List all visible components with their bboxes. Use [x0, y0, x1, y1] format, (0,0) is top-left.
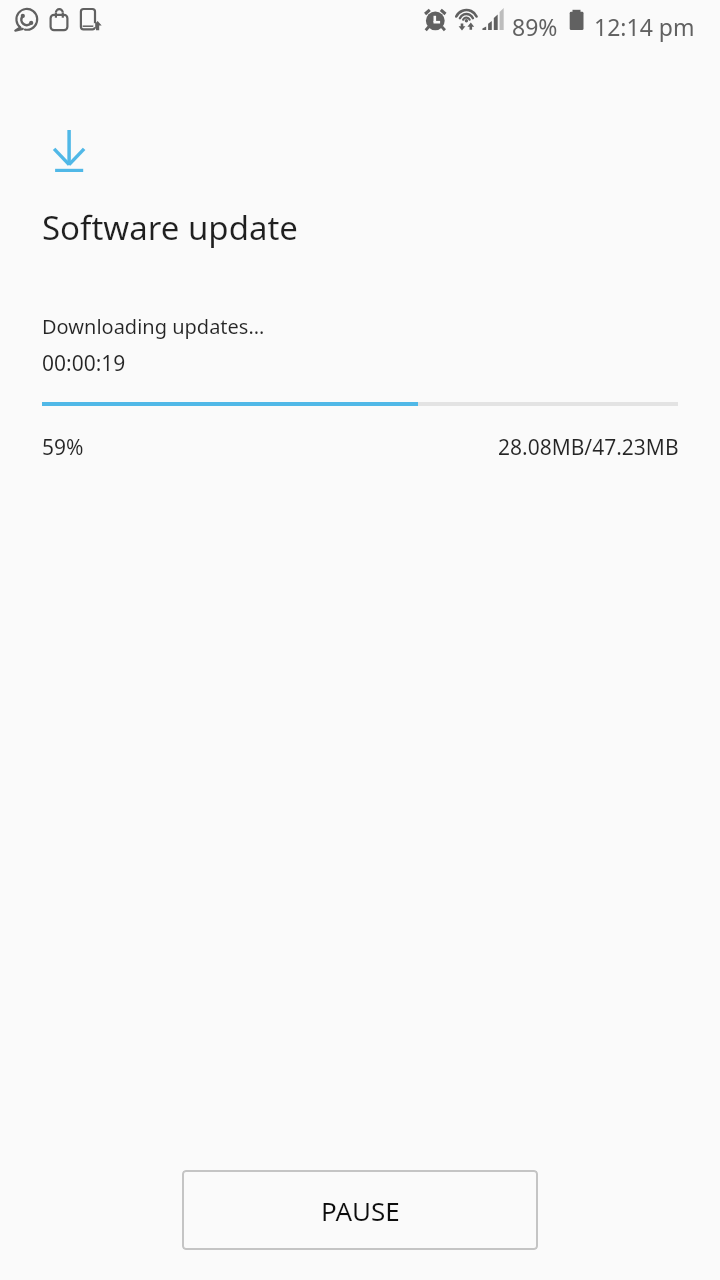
staticText: 00:00:19	[42, 349, 126, 378]
other: Software update download	[44, 126, 96, 178]
staticText: Downloading updates…	[42, 313, 265, 340]
staticText: 89%	[512, 11, 558, 42]
staticText: 28.08MB/47.23MB	[498, 433, 679, 462]
staticText: Software update	[42, 205, 298, 250]
staticText: PAUSE	[321, 1193, 400, 1228]
staticText: 59%	[42, 433, 84, 462]
button[interactable]: PAUSE	[182, 1170, 538, 1250]
staticText: 12:14 pm	[594, 11, 695, 42]
